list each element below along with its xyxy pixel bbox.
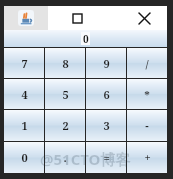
button[interactable]: 7 <box>4 48 44 78</box>
button[interactable]: 0 <box>4 30 167 47</box>
staticText: @51CTO博客 <box>40 149 131 169</box>
button[interactable]: 0 <box>4 142 44 173</box>
button[interactable]: 3 <box>86 110 126 141</box>
staticText: = <box>103 150 110 165</box>
button[interactable]: Maximize <box>62 6 92 30</box>
button[interactable]: 6 <box>86 79 126 109</box>
staticText: 6 <box>103 87 110 102</box>
button[interactable]: 9 <box>86 48 126 78</box>
staticText: 5 <box>62 87 69 102</box>
staticText: 1 <box>21 118 28 133</box>
staticText: 0 <box>83 32 89 45</box>
button[interactable]: Close <box>127 6 161 30</box>
staticText: + <box>144 150 151 165</box>
button[interactable]: . <box>45 142 85 173</box>
staticText: 0 <box>21 150 28 165</box>
button[interactable]: 2 <box>45 110 85 141</box>
button[interactable]: + <box>127 142 167 173</box>
button[interactable]: 1 <box>4 110 44 141</box>
staticText: 2 <box>62 118 69 133</box>
button[interactable]: / <box>127 48 167 78</box>
staticText: 7 <box>21 56 28 71</box>
staticText: * <box>144 87 150 102</box>
button[interactable]: 5 <box>45 79 85 109</box>
button[interactable]: - <box>127 110 167 141</box>
staticText: 4 <box>21 87 28 102</box>
staticText: . <box>63 150 67 165</box>
staticText: 3 <box>103 118 110 133</box>
staticText: 9 <box>103 56 110 71</box>
button[interactable]: = <box>86 142 126 173</box>
button[interactable]: 4 <box>4 79 44 109</box>
staticText: 8 <box>62 56 69 71</box>
button[interactable]: * <box>127 79 167 109</box>
button[interactable]: 8 <box>45 48 85 78</box>
staticText: - <box>145 118 149 133</box>
button[interactable]: App menu <box>4 6 48 30</box>
staticText: / <box>145 56 149 71</box>
